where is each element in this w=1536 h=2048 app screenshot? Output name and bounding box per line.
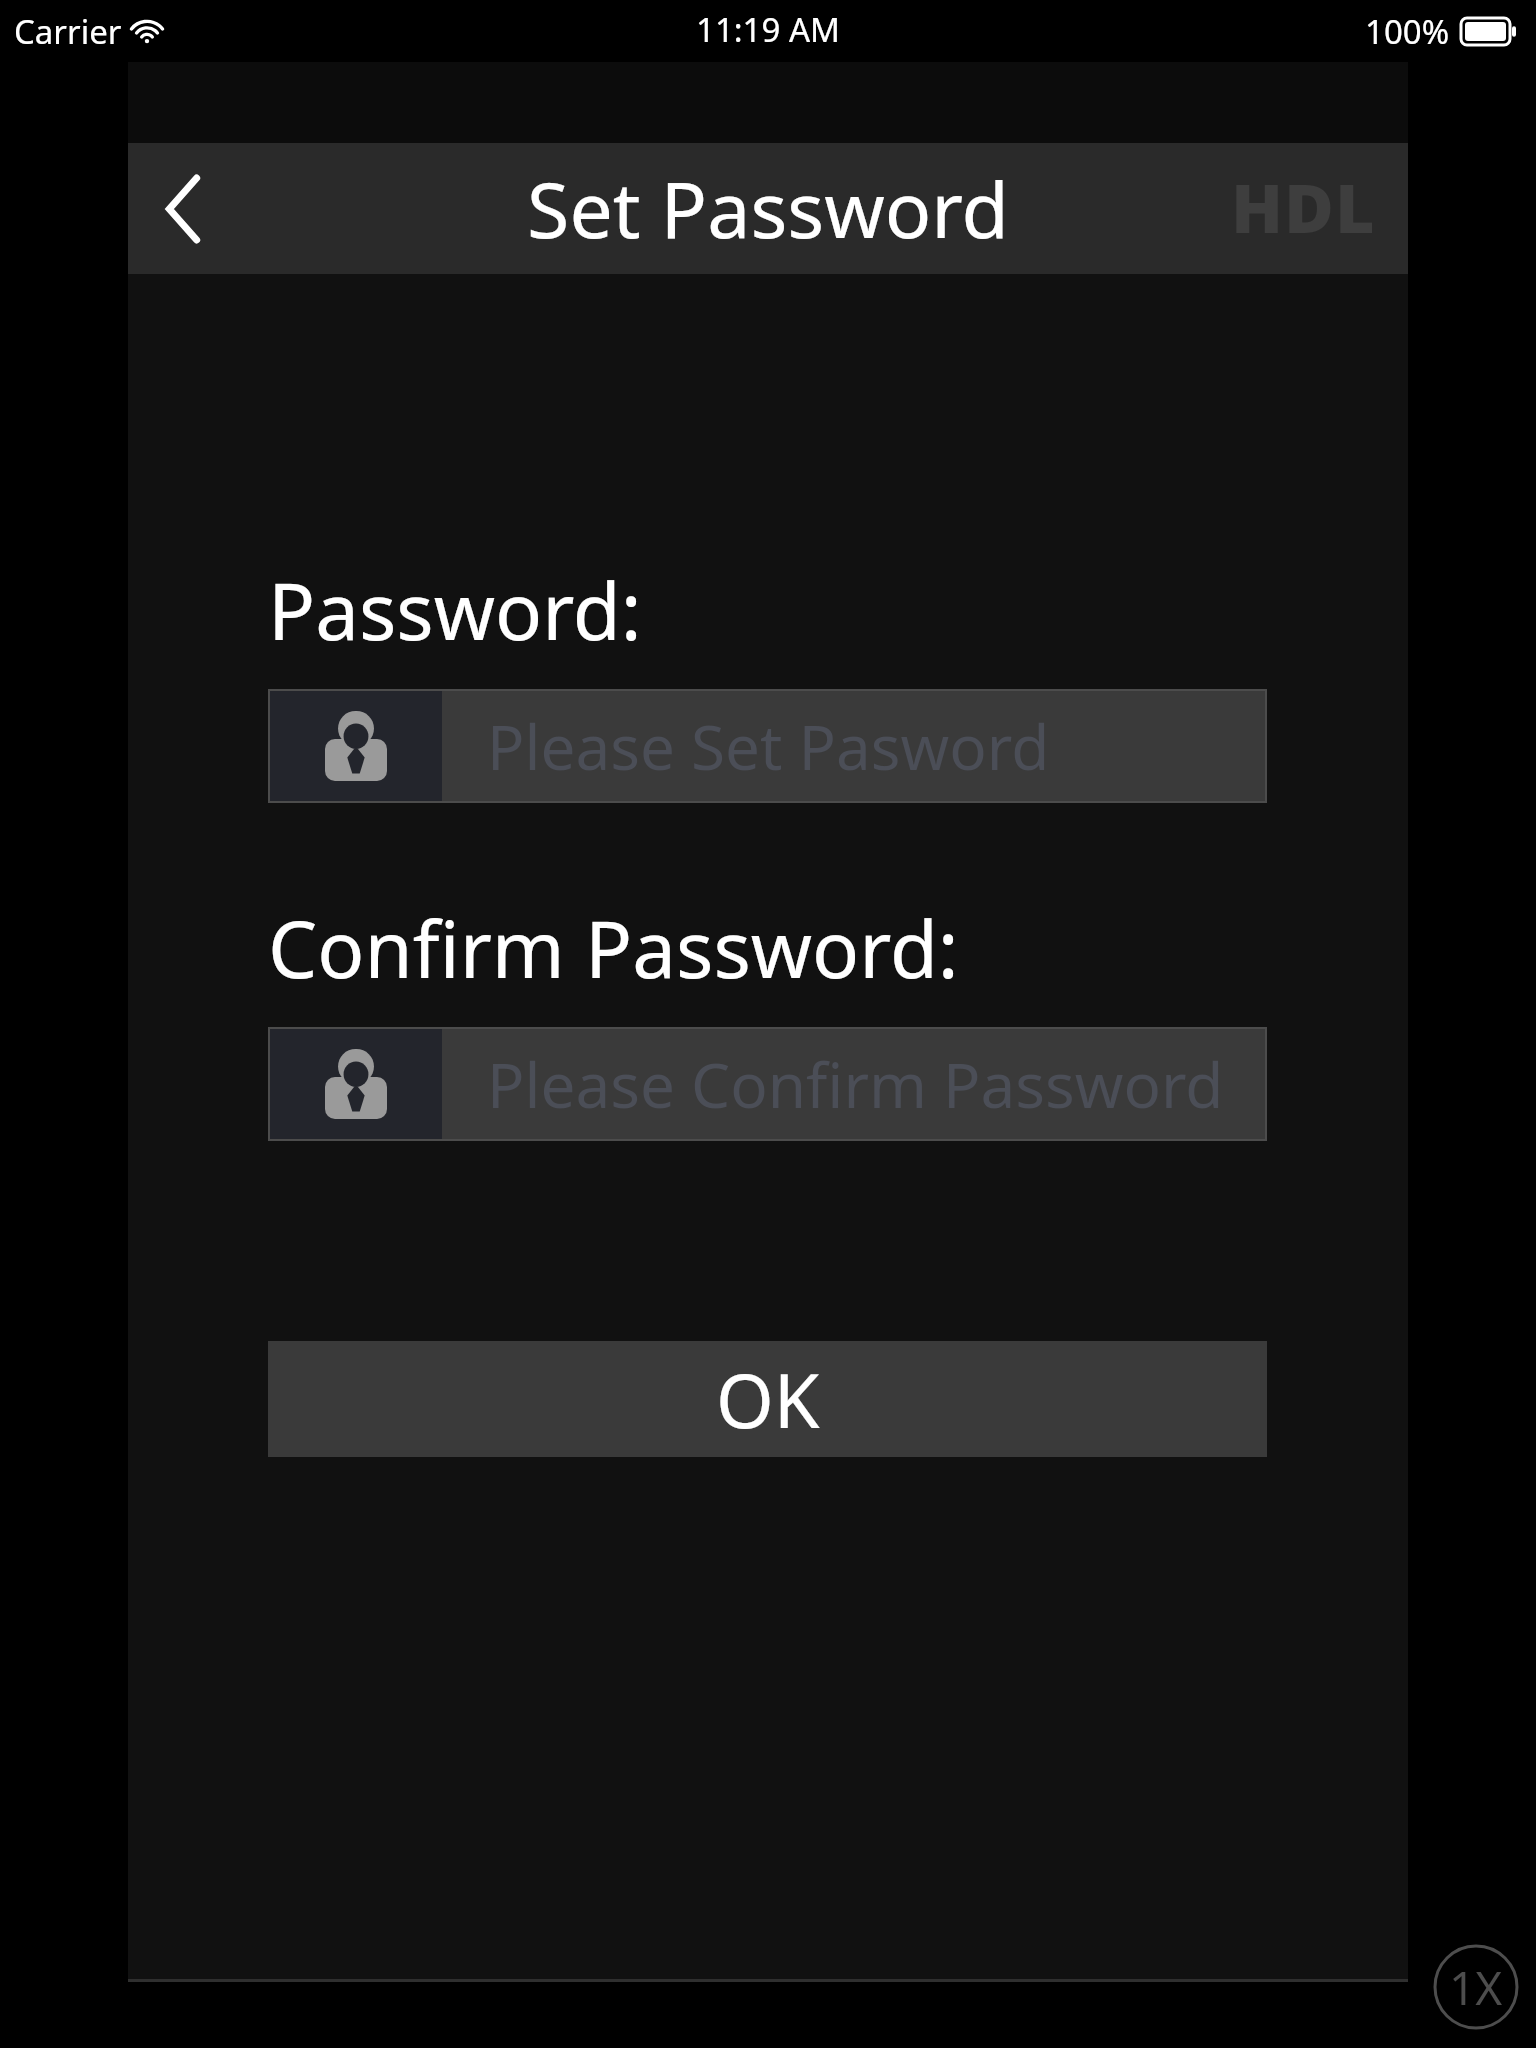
button[interactable]: Please Confirm Password <box>270 1029 1265 1139</box>
staticText: OK <box>716 1349 820 1450</box>
staticText: Please Confirm Password <box>487 1042 1224 1126</box>
staticText: 1X <box>1449 1956 1503 2019</box>
staticText: Password: <box>268 557 642 663</box>
button[interactable]: Zoom 1X <box>1433 1944 1519 2030</box>
button[interactable]: OK <box>268 1341 1267 1457</box>
staticText: 11:19 AM <box>696 7 840 52</box>
staticText: Confirm Password: <box>268 895 959 1001</box>
staticText: 100% <box>1365 9 1450 54</box>
button[interactable]: Back <box>128 154 238 264</box>
staticText: Carrier <box>14 9 122 54</box>
staticText: Please Set Pasword <box>487 704 1050 788</box>
button[interactable]: Please Set Pasword <box>270 691 1265 801</box>
staticText: HDL <box>1231 160 1376 253</box>
staticText: Set Password <box>527 156 1009 261</box>
